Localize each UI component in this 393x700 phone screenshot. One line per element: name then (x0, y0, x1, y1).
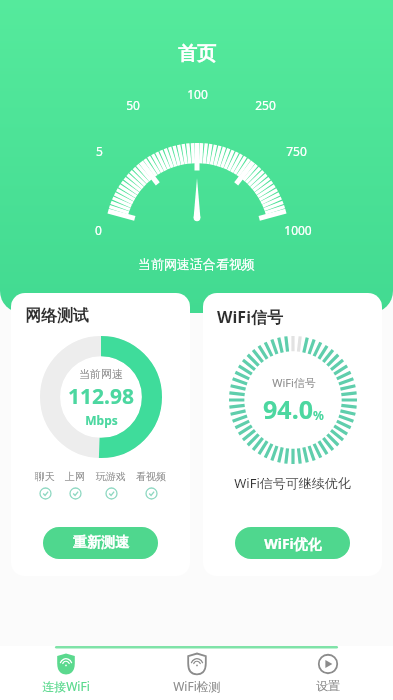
staticText: 上网 (65, 470, 85, 483)
button[interactable]: 重新测速 (43, 527, 158, 559)
button[interactable]: WiFi优化 (235, 527, 350, 559)
staticText: WiFi优化 (264, 534, 322, 553)
staticText: 112.98 (68, 382, 134, 411)
button[interactable]: 连接WiFi (0, 646, 131, 700)
staticText: 1000 (284, 222, 312, 238)
staticText: WiFi检测 (173, 678, 221, 694)
button[interactable]: 设置 (262, 646, 393, 700)
button[interactable]: WiFi检测 (131, 646, 262, 700)
staticText: 重新测速 (73, 534, 129, 552)
staticText: 当前网速适合看视频 (138, 256, 255, 272)
staticText: 首页 (178, 42, 216, 66)
staticText: 5 (96, 143, 103, 159)
staticText: WiFi信号 (217, 306, 283, 328)
staticText: Mbps (85, 412, 118, 428)
staticText: 玩游戏 (96, 470, 126, 483)
staticText: 看视频 (136, 470, 166, 483)
staticText: WiFi信号 (272, 375, 316, 390)
staticText: 设置 (316, 678, 340, 693)
staticText: 连接WiFi (42, 678, 90, 694)
staticText: 50 (126, 97, 140, 113)
staticText: WiFi信号可继续优化 (234, 474, 351, 492)
staticText: 750 (286, 143, 307, 159)
staticText: 250 (255, 97, 276, 113)
staticText: 当前网速 (79, 367, 123, 381)
staticText: % (313, 407, 324, 423)
staticText: 聊天 (35, 470, 55, 483)
staticText: 0 (95, 222, 102, 238)
staticText: 网络测试 (25, 306, 89, 326)
staticText: 100 (187, 86, 208, 102)
staticText: 94.0 (263, 392, 313, 426)
